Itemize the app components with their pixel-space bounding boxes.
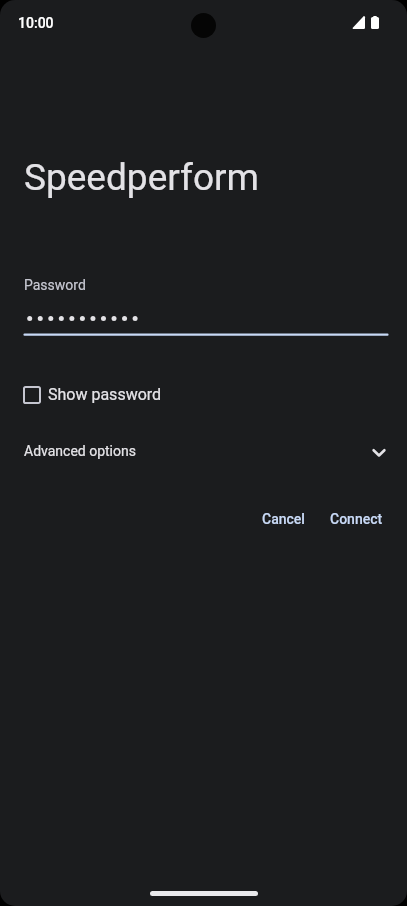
staticText: Password bbox=[24, 277, 86, 293]
button[interactable]: Advanced options bbox=[0, 433, 407, 469]
other: Expand advanced options bbox=[369, 441, 389, 461]
staticText: Cancel bbox=[262, 511, 305, 527]
button[interactable]: Password field bbox=[24, 306, 388, 338]
other: Battery bbox=[371, 16, 379, 29]
button[interactable]: Cancel bbox=[250, 502, 317, 536]
staticText: 10:00 bbox=[18, 15, 54, 31]
button[interactable]: Show password bbox=[0, 377, 407, 412]
button[interactable]: Connect bbox=[318, 502, 395, 536]
staticText: Show password bbox=[48, 385, 162, 404]
staticText: Advanced options bbox=[24, 443, 136, 459]
staticText: Speedperform bbox=[24, 156, 260, 199]
other: Signal strength bbox=[352, 16, 365, 29]
staticText: Connect bbox=[330, 511, 383, 527]
